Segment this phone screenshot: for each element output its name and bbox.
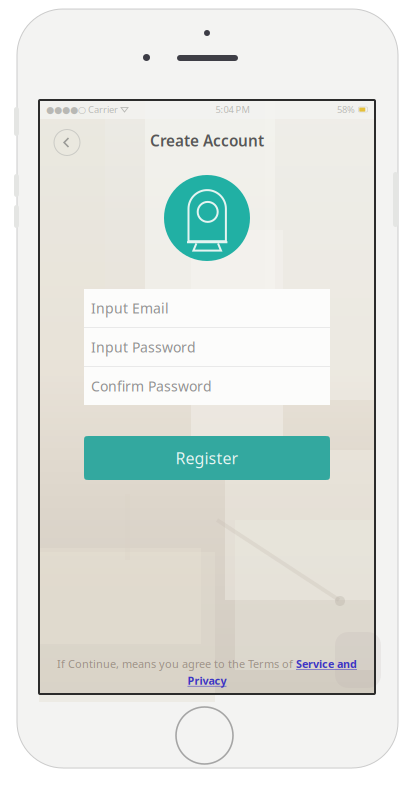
staticText: Input Email bbox=[91, 298, 169, 318]
staticText: Register bbox=[175, 447, 238, 469]
staticText: 5:04 PM bbox=[215, 103, 249, 116]
button[interactable]: Service and bbox=[296, 656, 357, 671]
button[interactable]: Confirm Password bbox=[84, 367, 330, 405]
staticText: Create Account bbox=[150, 130, 264, 151]
staticText: Privacy bbox=[187, 673, 226, 688]
button[interactable]: Register bbox=[84, 436, 330, 480]
staticText: Confirm Password bbox=[91, 376, 212, 396]
staticText: Input Password bbox=[91, 337, 196, 357]
staticText: 58% bbox=[337, 103, 355, 116]
button[interactable]: Back bbox=[51, 124, 83, 156]
staticText: If Continue, means you agree to the Term… bbox=[57, 656, 293, 671]
staticText: Service and bbox=[296, 656, 357, 671]
button[interactable]: Privacy bbox=[187, 673, 226, 688]
button[interactable]: Input Password bbox=[84, 328, 330, 366]
button[interactable]: Input Email bbox=[84, 289, 330, 327]
staticText: ●●●●○ Carrier bbox=[46, 103, 118, 116]
